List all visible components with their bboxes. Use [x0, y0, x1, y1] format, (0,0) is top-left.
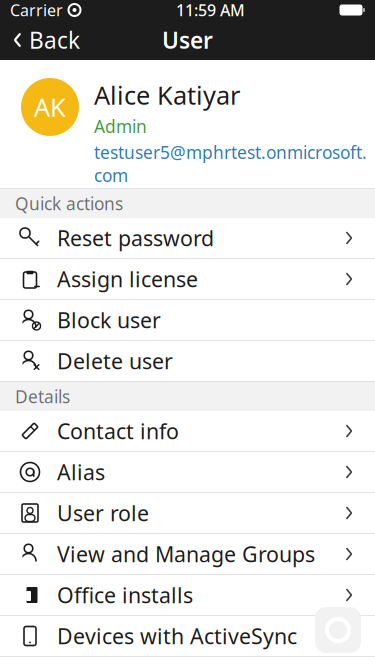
- button[interactable]: Alias: [0, 452, 375, 492]
- button[interactable]: Assign license: [0, 259, 375, 299]
- staticText: Admin: [94, 115, 147, 138]
- button[interactable]: Contact info: [0, 411, 375, 451]
- staticText: 11:59 AM: [176, 0, 245, 21]
- staticText: Block user: [57, 306, 161, 334]
- staticText: Alice Katiyar: [94, 78, 240, 112]
- button[interactable]: Reset password: [0, 218, 375, 258]
- button[interactable]: Delete user: [0, 341, 375, 381]
- staticText: Contact info: [57, 417, 179, 445]
- staticText: Assign license: [57, 265, 198, 293]
- staticText: Details: [15, 385, 70, 408]
- button[interactable]: View and Manage Groups: [0, 534, 375, 574]
- staticText: No phone number: [94, 190, 246, 213]
- button[interactable]: testuser5@mphrtest.onmicrosoft.com: [94, 141, 367, 187]
- staticText: testuser5@mphrtest.onmicrosoft.com: [94, 141, 367, 187]
- staticText: User role: [57, 499, 149, 527]
- staticText: User: [162, 25, 213, 55]
- staticText: Alias: [57, 458, 105, 486]
- button[interactable]: Devices with ActiveSync: [0, 616, 375, 656]
- staticText: Office installs: [57, 581, 193, 609]
- staticText: Delete user: [57, 347, 173, 375]
- button[interactable]: Office installs: [0, 575, 375, 615]
- staticText: Carrier: [10, 0, 63, 21]
- staticText: Reset password: [57, 224, 214, 252]
- button[interactable]: User role: [0, 493, 375, 533]
- button[interactable]: Block user: [0, 300, 375, 340]
- staticText: View and Manage Groups: [57, 540, 315, 568]
- staticText: Devices with ActiveSync: [57, 622, 297, 650]
- staticText: Back: [29, 25, 80, 55]
- staticText: Quick actions: [15, 192, 123, 215]
- staticText: AK: [34, 90, 66, 124]
- button[interactable]: Back: [0, 20, 92, 60]
